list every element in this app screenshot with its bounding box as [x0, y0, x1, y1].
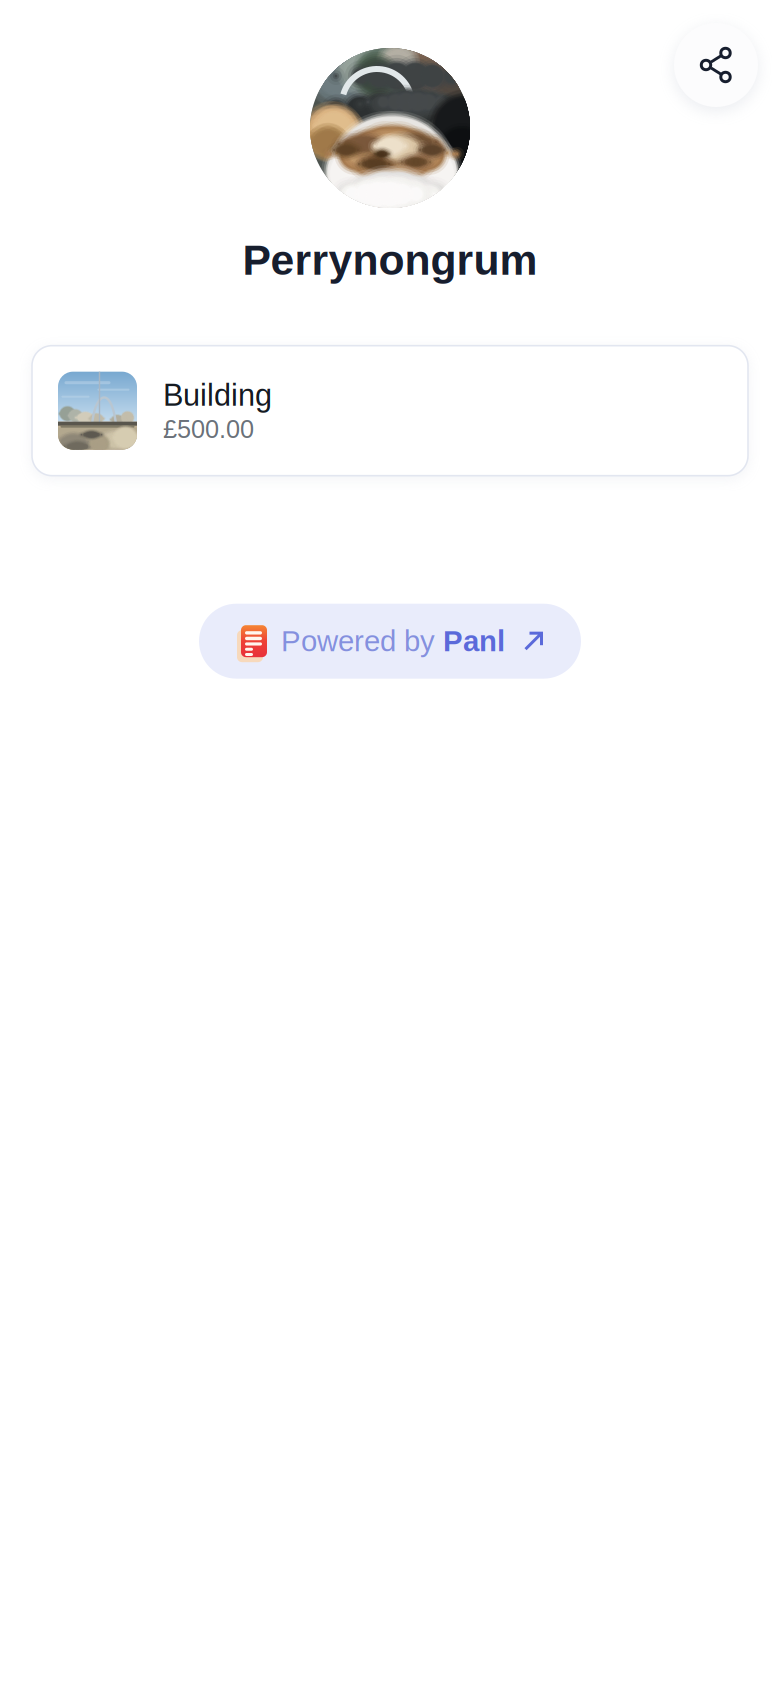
staticText: Building [163, 378, 272, 412]
staticText: Powered by [281, 625, 443, 658]
staticText: Perrynongrum [242, 236, 537, 284]
button[interactable]: Share [674, 23, 758, 107]
button[interactable]: Building [32, 346, 748, 476]
staticText: £500.00 [163, 415, 254, 443]
staticText: Panl [443, 625, 505, 658]
button[interactable]: Powered by [199, 604, 581, 679]
